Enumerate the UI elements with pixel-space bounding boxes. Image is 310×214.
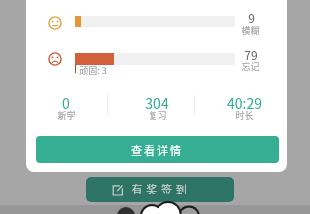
staticText: 模糊 (241, 24, 260, 36)
staticText: 顽固: 3 (79, 64, 107, 75)
staticText: 新学 (57, 109, 76, 120)
staticText: 9 (248, 9, 255, 23)
staticText: 79 (244, 46, 258, 60)
staticText: 查看详情 (131, 142, 183, 158)
staticText: 0 (62, 93, 70, 109)
staticText: 304 (145, 93, 169, 109)
button[interactable] (86, 177, 234, 202)
staticText: 复习 (148, 109, 167, 120)
staticText: 时长 (235, 109, 254, 120)
staticText: 40:29 (227, 93, 262, 109)
staticText: 有奖签到 (131, 181, 191, 194)
staticText: 忘记 (241, 60, 260, 72)
button[interactable]: 查看详情 (36, 136, 279, 163)
